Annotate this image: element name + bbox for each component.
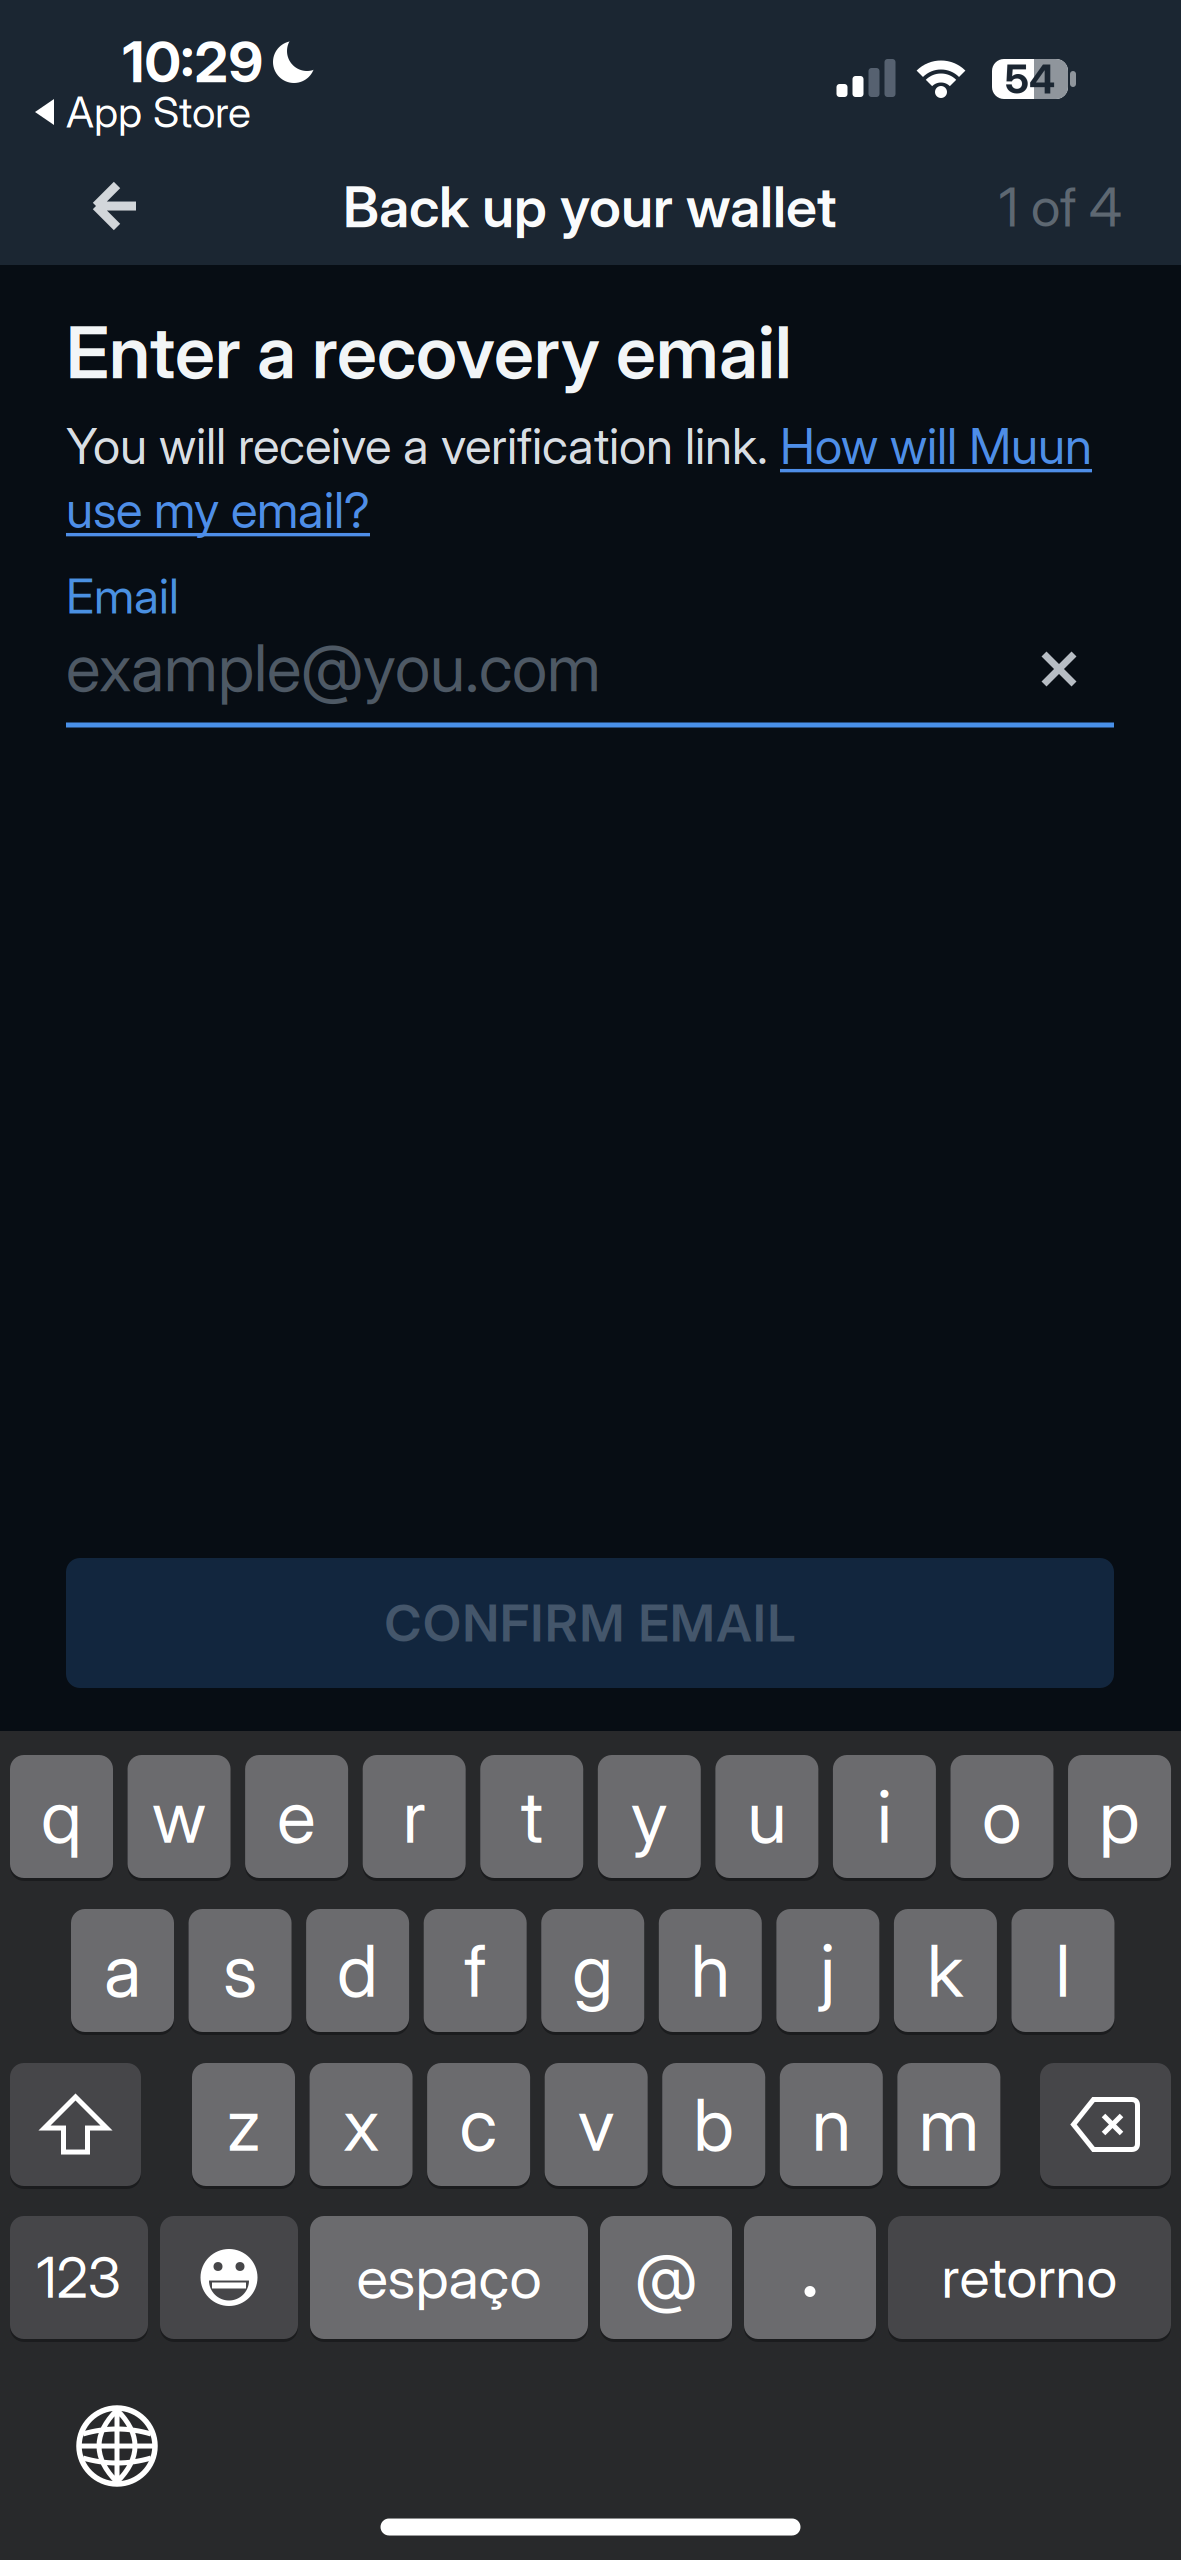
button[interactable]: l (1011, 1909, 1114, 2032)
staticText: @ (635, 2240, 697, 2315)
staticText: Email (66, 568, 179, 624)
button[interactable]: c (427, 2063, 530, 2186)
button[interactable]: Shift (10, 2063, 141, 2186)
button[interactable]: How will Muun (780, 417, 1092, 475)
button[interactable]: o (950, 1755, 1053, 1878)
staticText: c (460, 2082, 498, 2167)
staticText: v (578, 2082, 615, 2167)
button[interactable]: Back (92, 183, 140, 231)
button[interactable]: h (659, 1909, 762, 2032)
button[interactable]: x (310, 2063, 413, 2186)
staticText: 123 (36, 2244, 121, 2311)
staticText: j (820, 1928, 835, 2013)
staticText: z (226, 2082, 260, 2167)
button[interactable]: q (10, 1755, 113, 1878)
button[interactable]: t (480, 1755, 583, 1878)
button[interactable]: a (71, 1909, 174, 2032)
button[interactable]: Numbers (10, 2216, 148, 2339)
staticText: retorno (941, 2244, 1117, 2311)
staticText: i (877, 1774, 892, 1859)
button[interactable]: u (715, 1755, 818, 1878)
staticText: example@you.com (66, 630, 601, 706)
staticText: 1 of 4 (999, 175, 1122, 238)
button[interactable]: p (1068, 1755, 1171, 1878)
button[interactable]: f (424, 1909, 527, 2032)
button[interactable]: Emoji (160, 2216, 298, 2339)
staticText: use my email? (66, 481, 370, 539)
button[interactable]: i (833, 1755, 936, 1878)
staticText: h (691, 1928, 730, 2013)
button[interactable]: use my email? (66, 481, 370, 539)
button[interactable]: . (744, 2216, 876, 2339)
staticText: k (927, 1928, 964, 2013)
staticText: g (572, 1928, 613, 2013)
staticText: You will receive a verification link. (66, 417, 780, 475)
button[interactable]: @ (600, 2216, 732, 2339)
staticText: u (747, 1774, 786, 1859)
staticText: x (343, 2082, 379, 2167)
staticText: d (337, 1928, 378, 2013)
staticText: a (104, 1928, 141, 2013)
button[interactable]: m (897, 2063, 1000, 2186)
button[interactable]: e (245, 1755, 348, 1878)
staticText: w (152, 1774, 206, 1859)
staticText: m (919, 2082, 979, 2167)
staticText: r (403, 1774, 426, 1859)
staticText: e (277, 1774, 316, 1859)
button[interactable]: App Store (35, 90, 435, 134)
button[interactable]: CONFIRM EMAIL (66, 1558, 1114, 1688)
button[interactable]: Clear email (1040, 650, 1078, 688)
staticText: CONFIRM EMAIL (384, 1593, 795, 1653)
button[interactable]: retorno (888, 2216, 1171, 2339)
button[interactable]: espaço (310, 2216, 588, 2339)
staticText: Back up your wallet (343, 174, 837, 240)
staticText: 10:29 (122, 29, 263, 95)
button[interactable]: b (662, 2063, 765, 2186)
staticText: n (812, 2082, 851, 2167)
staticText: How will Muun (780, 417, 1092, 475)
staticText: f (464, 1928, 486, 2013)
staticText: l (1055, 1928, 1070, 2013)
button[interactable]: j (776, 1909, 879, 2032)
staticText: 54 (1005, 55, 1055, 103)
staticText: p (1099, 1774, 1140, 1859)
staticText: t (521, 1774, 543, 1859)
button[interactable]: y (598, 1755, 701, 1878)
staticText: y (631, 1774, 668, 1859)
staticText: espaço (356, 2243, 541, 2312)
staticText: s (223, 1928, 257, 2013)
staticText: b (693, 2082, 734, 2167)
staticText: q (41, 1774, 82, 1859)
button[interactable]: Next keyboard (77, 2406, 157, 2486)
button[interactable]: k (894, 1909, 997, 2032)
button[interactable]: Delete (1040, 2063, 1171, 2186)
button[interactable]: s (189, 1909, 292, 2032)
button[interactable]: g (541, 1909, 644, 2032)
staticText: o (982, 1774, 1022, 1859)
staticText: App Store (66, 87, 251, 137)
button[interactable]: z (192, 2063, 295, 2186)
button[interactable]: r (363, 1755, 466, 1878)
staticText: Enter a recovery email (66, 309, 792, 394)
button[interactable]: n (780, 2063, 883, 2186)
button[interactable]: v (545, 2063, 648, 2186)
button[interactable]: d (306, 1909, 409, 2032)
button[interactable]: w (128, 1755, 231, 1878)
